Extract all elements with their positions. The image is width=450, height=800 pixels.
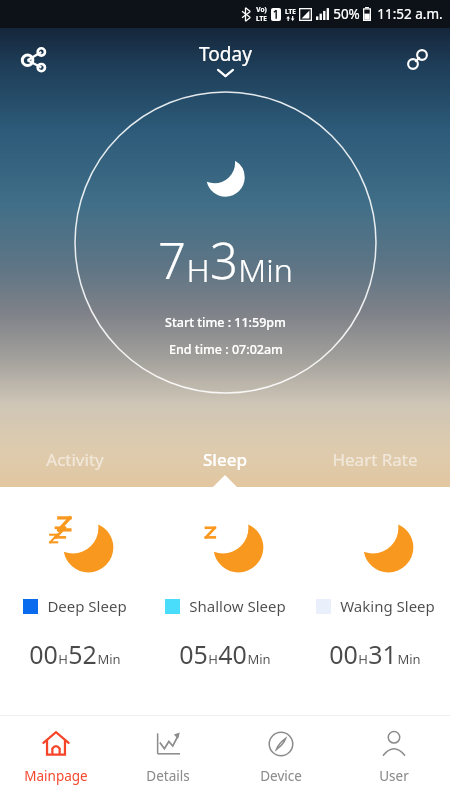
staticText: H (58, 650, 68, 668)
staticText: 50% (333, 5, 360, 23)
button[interactable]: Shallow Sleep (150, 593, 300, 619)
staticText: Device (260, 767, 302, 785)
staticText: Deep Sleep (47, 596, 127, 616)
staticText: LTE (285, 7, 296, 16)
staticText: 31 (368, 637, 397, 671)
button[interactable]: Details (112, 716, 224, 800)
staticText: Start time : 11:59pm (165, 314, 286, 331)
staticText: Activity (46, 448, 104, 471)
staticText: H (358, 650, 368, 668)
button[interactable]: Waking Sleep (300, 593, 450, 619)
button[interactable]: 05 (150, 635, 300, 671)
staticText: Min (247, 650, 271, 668)
button[interactable]: User (337, 716, 450, 800)
button[interactable]: Sleep (150, 431, 300, 487)
button[interactable]: Deep Sleep (0, 593, 150, 619)
staticText: User (379, 767, 409, 785)
button[interactable]: Heart Rate (300, 431, 450, 487)
button[interactable] (300, 511, 450, 577)
staticText: 40 (218, 637, 247, 671)
button[interactable]: 00 (300, 635, 450, 671)
button[interactable] (150, 511, 300, 577)
staticText: Heart Rate (332, 448, 418, 471)
staticText: Today (199, 41, 252, 67)
staticText: Details (146, 767, 190, 785)
staticText: 52 (68, 637, 97, 671)
staticText: End time : 07:02am (169, 341, 283, 358)
staticText: 00 (29, 637, 58, 671)
staticText: Waking Sleep (340, 596, 435, 616)
button[interactable]: Today (179, 38, 272, 80)
staticText: Min (397, 650, 421, 668)
staticText: H (208, 650, 218, 668)
button[interactable]: Share (10, 36, 56, 82)
staticText: 00 (329, 637, 358, 671)
button[interactable]: Mainpage (0, 716, 112, 800)
staticText: Mainpage (24, 767, 88, 785)
staticText: 7 (158, 227, 186, 294)
button[interactable]: Link device (394, 36, 440, 82)
staticText: 11:52 a.m. (377, 5, 443, 23)
staticText: LTE (256, 14, 267, 23)
staticText: Shallow Sleep (189, 596, 286, 616)
staticText: H (186, 248, 210, 292)
staticText: 05 (179, 637, 208, 671)
staticText: Min (238, 248, 293, 292)
staticText: Sleep (203, 448, 247, 471)
button[interactable] (0, 511, 150, 577)
staticText: 3 (210, 227, 238, 294)
staticText: Vo) (256, 5, 267, 14)
button[interactable]: 00 (0, 635, 150, 671)
button[interactable]: Device (224, 716, 337, 800)
button[interactable]: Activity (0, 431, 150, 487)
staticText: Min (97, 650, 121, 668)
